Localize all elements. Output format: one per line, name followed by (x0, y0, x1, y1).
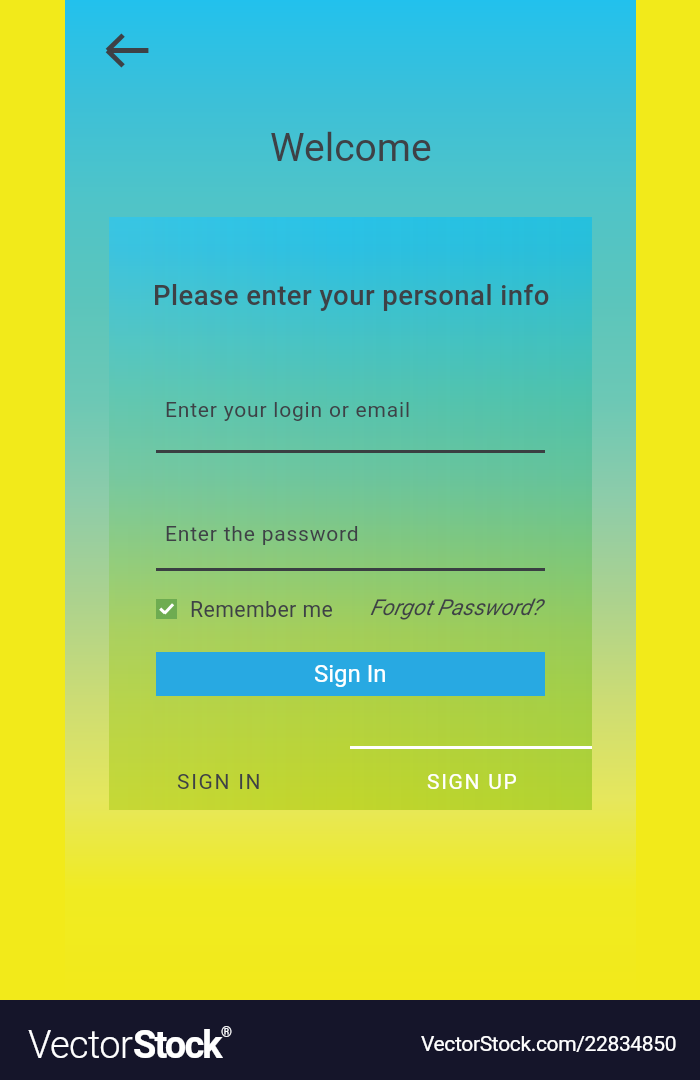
staticText: SIGN IN (177, 770, 263, 795)
staticText: Enter the password (165, 522, 360, 547)
staticText: ® (221, 1024, 233, 1040)
staticText: Stock (133, 1023, 221, 1068)
staticText: Sign In (314, 660, 387, 688)
button[interactable]: SIGN IN (140, 758, 300, 806)
staticText: Please enter your personal info (153, 279, 550, 311)
button[interactable]: Back (90, 20, 160, 80)
staticText: SIGN UP (427, 770, 519, 795)
button[interactable]: Sign In (156, 652, 545, 696)
button[interactable]: Remember me (156, 594, 334, 624)
staticText: Remember me (190, 597, 334, 622)
staticText: Enter your login or email (165, 398, 411, 423)
staticText: VectorStock.com/22834850 (421, 1032, 677, 1057)
button[interactable]: SIGN UP (393, 758, 553, 806)
button[interactable]: Forgot Password? (370, 595, 542, 621)
staticText: Welcome (270, 125, 432, 171)
staticText: Vector (28, 1023, 133, 1068)
